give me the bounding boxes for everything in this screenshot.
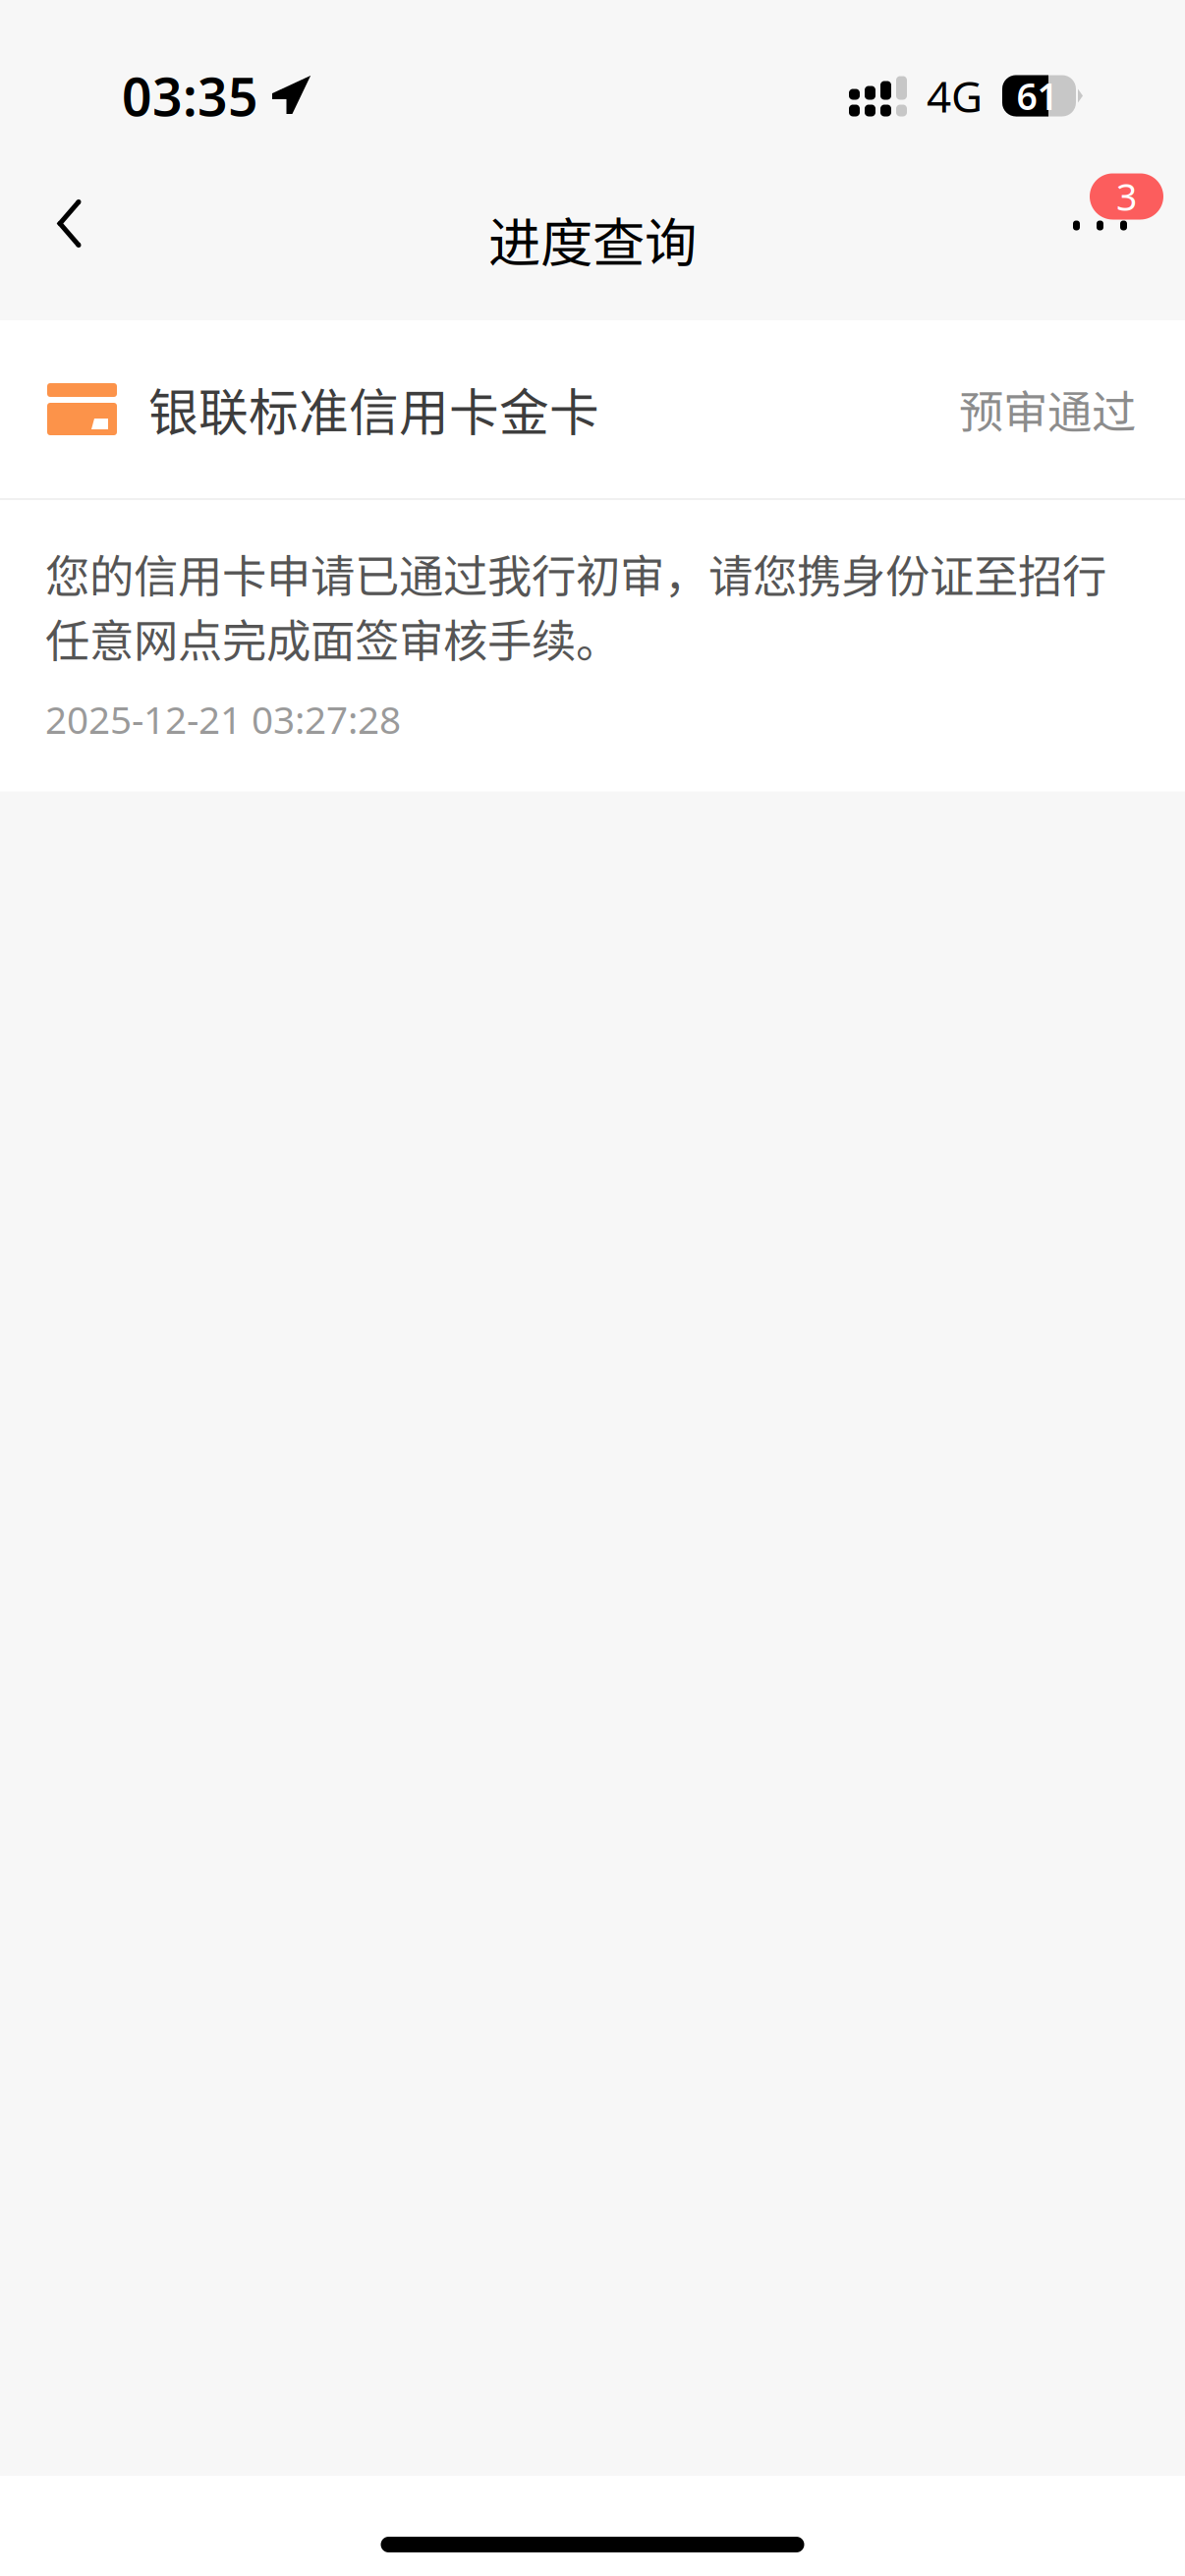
staticText: 61	[1016, 71, 1058, 120]
button[interactable]: 返回	[0, 181, 108, 299]
staticText: 3	[1116, 172, 1137, 221]
button[interactable]: 银联标准信用卡金卡	[0, 320, 1185, 498]
staticText: 2025-12-21 03:27:28	[45, 694, 401, 744]
staticText: 预审通过	[959, 377, 1136, 441]
staticText: 银联标准信用卡金卡	[148, 373, 599, 445]
staticText: 03:35	[122, 61, 258, 131]
staticText: 您的信用卡申请已通过我行初审，请您携身份证至招行任意网点完成面签审核手续。	[45, 541, 1106, 670]
button[interactable]: 更多	[1059, 181, 1185, 299]
staticText: 4G	[927, 67, 983, 124]
staticText: 进度查询	[488, 201, 697, 277]
